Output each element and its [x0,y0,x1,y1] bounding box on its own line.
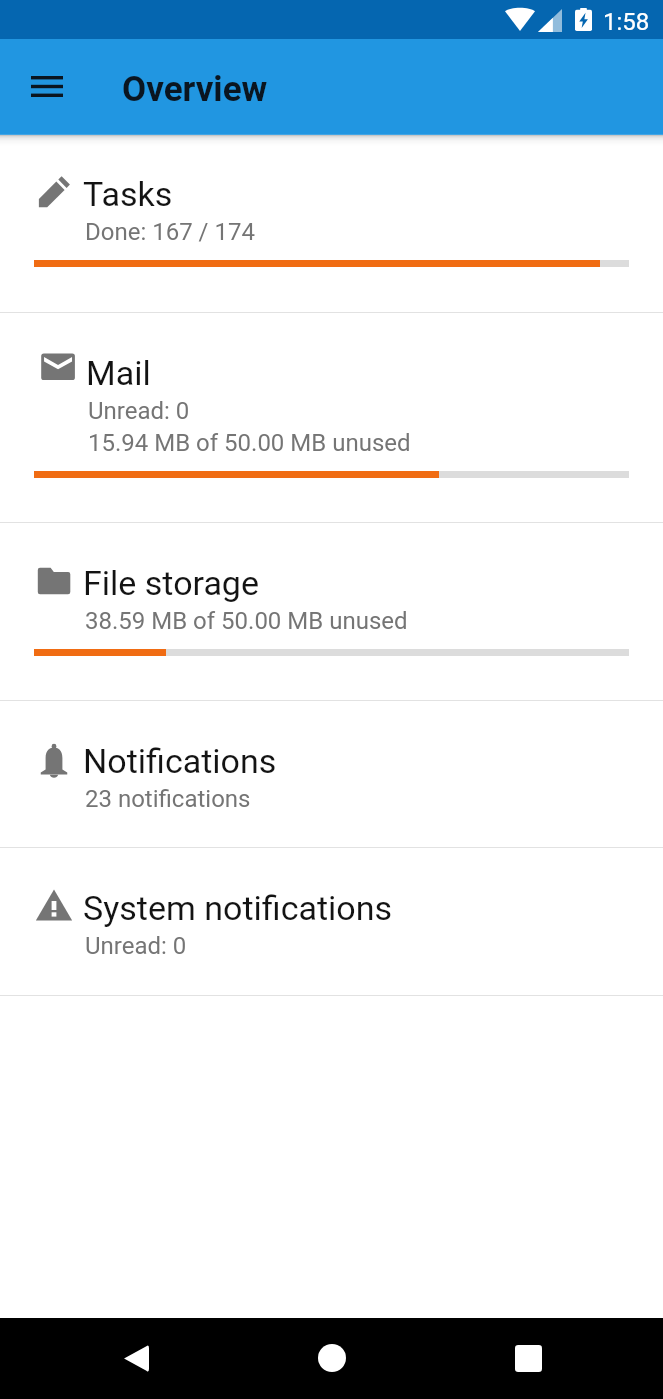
staticText: 15.94 MB of 50.00 MB unused [88,429,411,457]
staticText: Overview [122,69,268,110]
staticText: 1:58 [603,8,650,36]
staticText: System notifications [83,888,393,928]
staticText: Unread: 0 [85,932,187,960]
button[interactable]: Back [95,1328,176,1389]
staticText: Tasks [83,174,173,214]
staticText: Unread: 0 [88,397,190,425]
button[interactable]: System notifications [0,848,663,995]
staticText: 23 notifications [85,785,251,813]
button[interactable]: Open navigation drawer [7,49,87,124]
staticText: File storage [83,563,259,603]
staticText: Notifications [83,741,277,781]
button[interactable]: Notifications [0,701,663,847]
button[interactable]: Home [291,1328,372,1389]
button[interactable]: Mail [0,313,663,522]
staticText: Mail [86,353,151,393]
staticText: 38.59 MB of 50.00 MB unused [85,607,408,635]
button[interactable]: Tasks [0,134,663,312]
staticText: Done: 167 / 174 [85,218,255,246]
button[interactable]: File storage [0,523,663,700]
button[interactable]: Recent apps [488,1328,569,1389]
